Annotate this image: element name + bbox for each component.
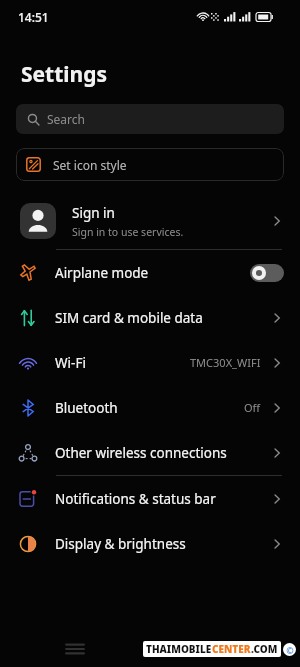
button[interactable]: Sign in [0,193,300,249]
button[interactable]: Wi-Fi [0,340,300,385]
button[interactable]: Display & brightness [0,521,300,566]
staticText: Off [244,400,261,415]
button[interactable]: Airplane mode [0,250,300,295]
staticText: THAIMOBILE [146,642,212,656]
button[interactable]: Bluetooth [0,385,300,430]
button[interactable]: Airplane mode toggle [250,264,284,282]
button[interactable]: Recent apps [62,636,88,662]
staticText: Bluetooth [55,399,244,417]
staticText: Sign in [72,204,115,222]
button[interactable]: Set icon style [16,148,284,181]
staticText: Display & brightness [55,535,270,553]
staticText: 14:51 [18,9,49,25]
staticText: Other wireless connections [55,444,270,462]
staticText: © [286,644,294,656]
staticText: Search [47,111,85,127]
staticText: Settings [21,60,108,89]
button[interactable]: Search [16,104,284,134]
staticText: Sign in to use services. [72,225,184,239]
staticText: Notifications & status bar [55,490,270,508]
staticText: Set icon style [53,157,127,173]
staticText: TMC30X_WIFI [190,355,261,370]
staticText: CENTER [212,642,251,656]
button[interactable]: Other wireless connections [0,430,300,475]
button[interactable]: SIM card & mobile data [0,295,300,340]
staticText: .COM [251,642,278,656]
staticText: SIM card & mobile data [55,309,270,327]
staticText: Airplane mode [55,264,250,282]
staticText: Wi-Fi [55,354,190,372]
button[interactable]: Notifications & status bar [0,476,300,521]
